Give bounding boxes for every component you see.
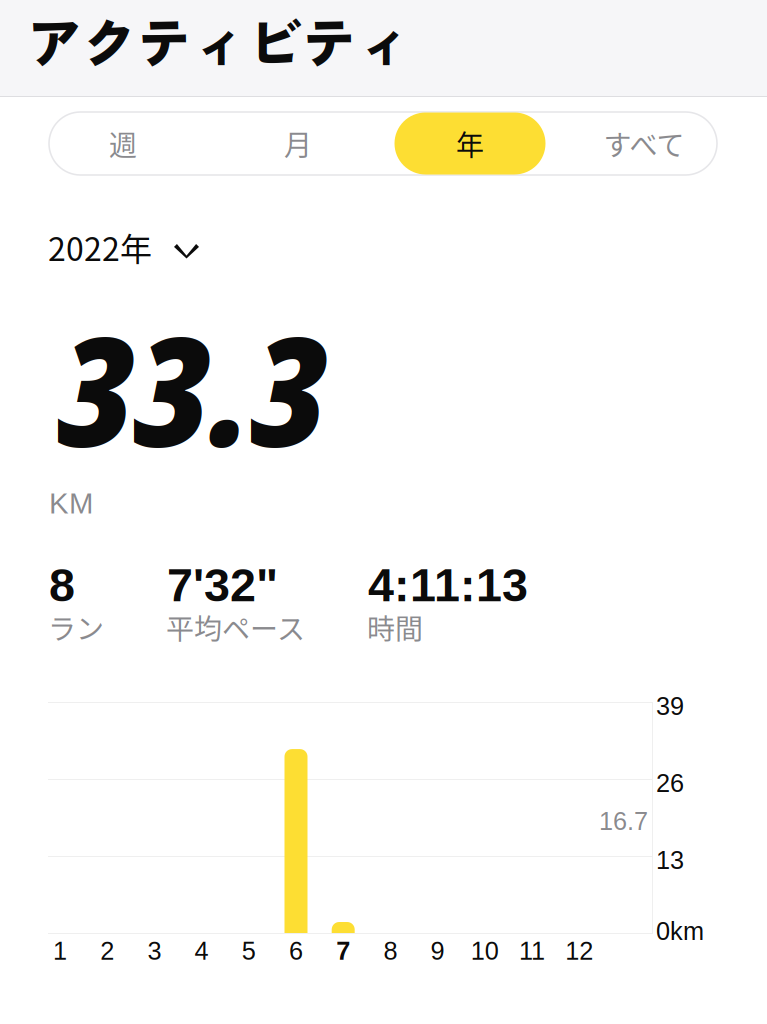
staticText: 5	[242, 937, 256, 965]
staticText: 10	[471, 937, 499, 965]
staticText: 平均ペース	[166, 607, 305, 647]
staticText: ラン	[48, 607, 104, 647]
staticText: 時間	[367, 607, 423, 647]
button[interactable]: 週	[42, 112, 204, 175]
staticText: 33.3	[58, 285, 327, 490]
staticText: 2022年	[48, 224, 152, 270]
button[interactable]: 年	[389, 112, 551, 175]
staticText: 4:11:13	[368, 559, 528, 611]
staticText: 8	[49, 559, 75, 611]
staticText: 月	[284, 123, 312, 164]
staticText: 6	[289, 937, 303, 965]
button[interactable]: すべて	[563, 112, 725, 175]
staticText: 8	[383, 937, 397, 965]
staticText: 16.7	[599, 807, 648, 835]
staticText: 7'32"	[167, 559, 278, 611]
staticText: 1	[53, 937, 67, 965]
staticText: すべて	[603, 123, 684, 164]
staticText: 13	[656, 846, 684, 874]
staticText: 9	[431, 937, 445, 965]
staticText: 年	[456, 123, 484, 164]
staticText: 11	[519, 937, 545, 965]
staticText: 2	[100, 937, 114, 965]
staticText: 26	[656, 769, 684, 797]
staticText: 週	[109, 123, 137, 164]
staticText: アクティビティ	[27, 0, 412, 79]
staticText: 7	[336, 937, 350, 965]
staticText: 4	[195, 937, 209, 965]
staticText: 3	[147, 937, 161, 965]
staticText: 39	[656, 692, 684, 720]
staticText: 0km	[656, 917, 704, 945]
button[interactable]: 月	[217, 112, 379, 175]
staticText: 12	[565, 937, 593, 965]
staticText: KM	[49, 487, 93, 520]
button[interactable]: 2022年	[48, 224, 208, 270]
